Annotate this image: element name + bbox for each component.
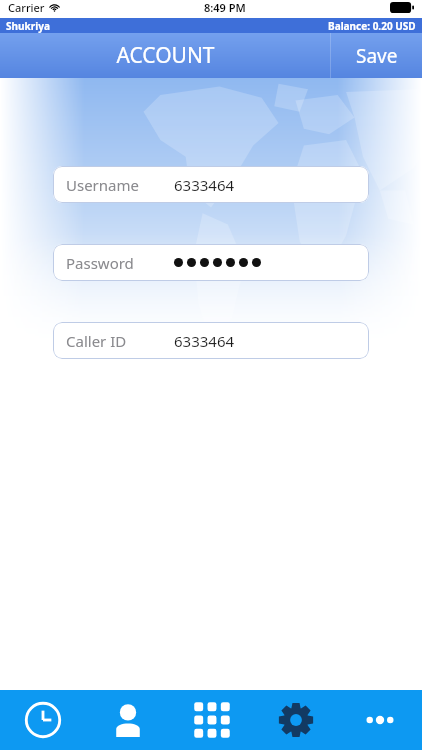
staticText: 6333464 bbox=[174, 331, 235, 351]
staticText: Balance: 0.20 USD bbox=[328, 19, 416, 33]
button[interactable]: Settings bbox=[254, 690, 338, 750]
staticText: 6333464 bbox=[174, 175, 235, 195]
button[interactable]: Recents bbox=[0, 690, 85, 750]
staticText: Password bbox=[66, 253, 134, 273]
staticText: Save bbox=[356, 43, 398, 69]
button[interactable]: Save bbox=[331, 33, 422, 78]
button[interactable]: Username bbox=[53, 166, 369, 203]
staticText: Shukriya bbox=[6, 19, 50, 33]
button[interactable]: ACCOUNT bbox=[0, 33, 330, 78]
staticText: Username bbox=[66, 175, 139, 195]
button[interactable]: Password bbox=[53, 244, 369, 281]
button[interactable]: Keypad bbox=[170, 690, 254, 750]
button[interactable]: Caller ID bbox=[53, 322, 369, 359]
staticText: 8:49 PM bbox=[204, 0, 246, 15]
staticText: ACCOUNT bbox=[116, 41, 215, 70]
button[interactable]: More bbox=[338, 690, 422, 750]
staticText: Carrier bbox=[8, 0, 45, 15]
staticText: Caller ID bbox=[66, 331, 127, 351]
button[interactable]: Contacts bbox=[85, 690, 170, 750]
